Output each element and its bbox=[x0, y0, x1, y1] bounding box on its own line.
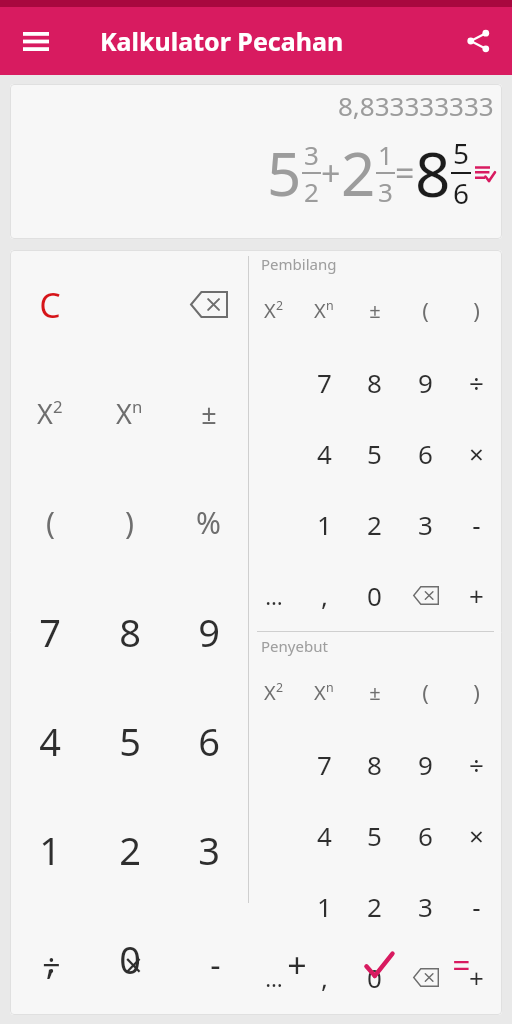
button[interactable]: × bbox=[451, 418, 502, 489]
button[interactable]: - bbox=[174, 915, 256, 1015]
button[interactable]: - bbox=[451, 489, 502, 560]
staticText: ÷ bbox=[42, 943, 61, 987]
button[interactable]: Confirm bbox=[338, 915, 420, 1015]
button[interactable]: + bbox=[256, 915, 338, 1015]
button[interactable]: 8,833333333 bbox=[10, 84, 502, 239]
staticText: 8,833333333 bbox=[338, 88, 494, 123]
button[interactable]: 3 bbox=[169, 795, 248, 904]
button[interactable]: 5 bbox=[349, 418, 400, 489]
staticText: 7 bbox=[39, 606, 61, 658]
button[interactable]: + bbox=[451, 942, 502, 1013]
button[interactable]: 0 bbox=[349, 560, 400, 631]
button[interactable]: ( bbox=[10, 468, 90, 577]
staticText: X bbox=[37, 395, 53, 432]
staticText: + bbox=[469, 578, 484, 613]
staticText: 3 bbox=[378, 174, 393, 209]
staticText: 3 bbox=[198, 824, 220, 876]
button[interactable]: × bbox=[92, 915, 174, 1015]
button[interactable]: Backspace bbox=[169, 250, 248, 359]
button[interactable]: 7 bbox=[299, 346, 349, 418]
button[interactable]: ÷ bbox=[451, 728, 502, 800]
button[interactable]: ) bbox=[451, 656, 502, 728]
button[interactable]: ( bbox=[400, 274, 451, 346]
button[interactable]: ± bbox=[349, 274, 400, 346]
button[interactable]: X bbox=[299, 656, 349, 728]
button[interactable]: X bbox=[90, 359, 169, 468]
staticText: ( bbox=[422, 295, 429, 325]
button[interactable]: ± bbox=[169, 359, 248, 468]
button[interactable]: … bbox=[249, 560, 299, 631]
button[interactable]: Backspace bbox=[400, 560, 451, 631]
button[interactable]: 4 bbox=[10, 686, 90, 795]
staticText: ) bbox=[473, 295, 480, 325]
staticText: Penyebut bbox=[261, 636, 328, 656]
button[interactable]: 3 bbox=[400, 489, 451, 560]
button[interactable]: 0 bbox=[90, 904, 169, 1013]
button[interactable]: ÷ bbox=[451, 346, 502, 418]
staticText: … bbox=[265, 581, 283, 611]
button[interactable]: … bbox=[249, 942, 299, 1013]
button[interactable]: 9 bbox=[169, 577, 248, 686]
staticText: ± bbox=[369, 679, 381, 706]
button[interactable]: ÷ bbox=[10, 915, 92, 1015]
button[interactable]: Menu bbox=[12, 17, 60, 65]
staticText: 2 bbox=[53, 395, 63, 418]
button[interactable]: X bbox=[249, 656, 299, 728]
staticText: 6 bbox=[198, 715, 220, 767]
button[interactable]: 2 bbox=[349, 871, 400, 942]
staticText: + bbox=[321, 150, 341, 196]
button[interactable]: 7 bbox=[299, 728, 349, 800]
staticText: 2 bbox=[276, 679, 284, 696]
staticText: X bbox=[314, 297, 326, 324]
button[interactable]: × bbox=[451, 800, 502, 871]
button[interactable]: ) bbox=[90, 468, 169, 577]
button[interactable]: X bbox=[299, 274, 349, 346]
button[interactable]: Backspace bbox=[400, 942, 451, 1013]
staticText: X bbox=[264, 679, 276, 706]
button[interactable]: 6 bbox=[400, 418, 451, 489]
button[interactable]: 1 bbox=[299, 489, 349, 560]
staticText: 9 bbox=[198, 606, 220, 658]
staticText: n bbox=[326, 297, 334, 314]
button[interactable]: 3 bbox=[400, 871, 451, 942]
button[interactable]: 2 bbox=[349, 489, 400, 560]
button[interactable]: ( bbox=[400, 656, 451, 728]
staticText: 2 bbox=[119, 824, 141, 876]
button[interactable]: 6 bbox=[169, 686, 248, 795]
button[interactable]: 6 bbox=[400, 800, 451, 871]
button[interactable]: , bbox=[299, 942, 349, 1013]
button[interactable]: , bbox=[10, 904, 90, 1013]
button[interactable]: , bbox=[299, 560, 349, 631]
button[interactable]: 4 bbox=[299, 418, 349, 489]
button[interactable]: X bbox=[249, 274, 299, 346]
button[interactable]: 4 bbox=[299, 800, 349, 871]
button[interactable]: ± bbox=[349, 656, 400, 728]
staticText: 4 bbox=[317, 818, 332, 853]
button[interactable]: - bbox=[451, 871, 502, 942]
button[interactable]: 8 bbox=[90, 577, 169, 686]
button[interactable]: 8 bbox=[349, 346, 400, 418]
button[interactable]: 2 bbox=[90, 795, 169, 904]
button[interactable]: 1 bbox=[299, 871, 349, 942]
button[interactable]: + bbox=[451, 560, 502, 631]
button[interactable]: 9 bbox=[400, 346, 451, 418]
button[interactable]: 8 bbox=[349, 728, 400, 800]
button[interactable]: 7 bbox=[10, 577, 90, 686]
button[interactable]: C bbox=[10, 250, 90, 359]
staticText: 1 bbox=[317, 507, 332, 542]
staticText: 0 bbox=[367, 578, 382, 613]
button[interactable]: % bbox=[169, 468, 248, 577]
button[interactable]: 9 bbox=[400, 728, 451, 800]
button[interactable]: ) bbox=[451, 274, 502, 346]
button[interactable]: 5 bbox=[90, 686, 169, 795]
button[interactable]: Share bbox=[454, 17, 502, 65]
button[interactable]: History bbox=[474, 162, 496, 184]
staticText: × bbox=[124, 943, 143, 987]
staticText: 9 bbox=[418, 747, 433, 782]
button[interactable]: 5 bbox=[349, 800, 400, 871]
staticText: 8 bbox=[119, 606, 141, 658]
button[interactable]: = bbox=[420, 915, 502, 1015]
button[interactable]: X bbox=[10, 359, 90, 468]
button[interactable]: 1 bbox=[10, 795, 90, 904]
button[interactable]: 0 bbox=[349, 942, 400, 1013]
